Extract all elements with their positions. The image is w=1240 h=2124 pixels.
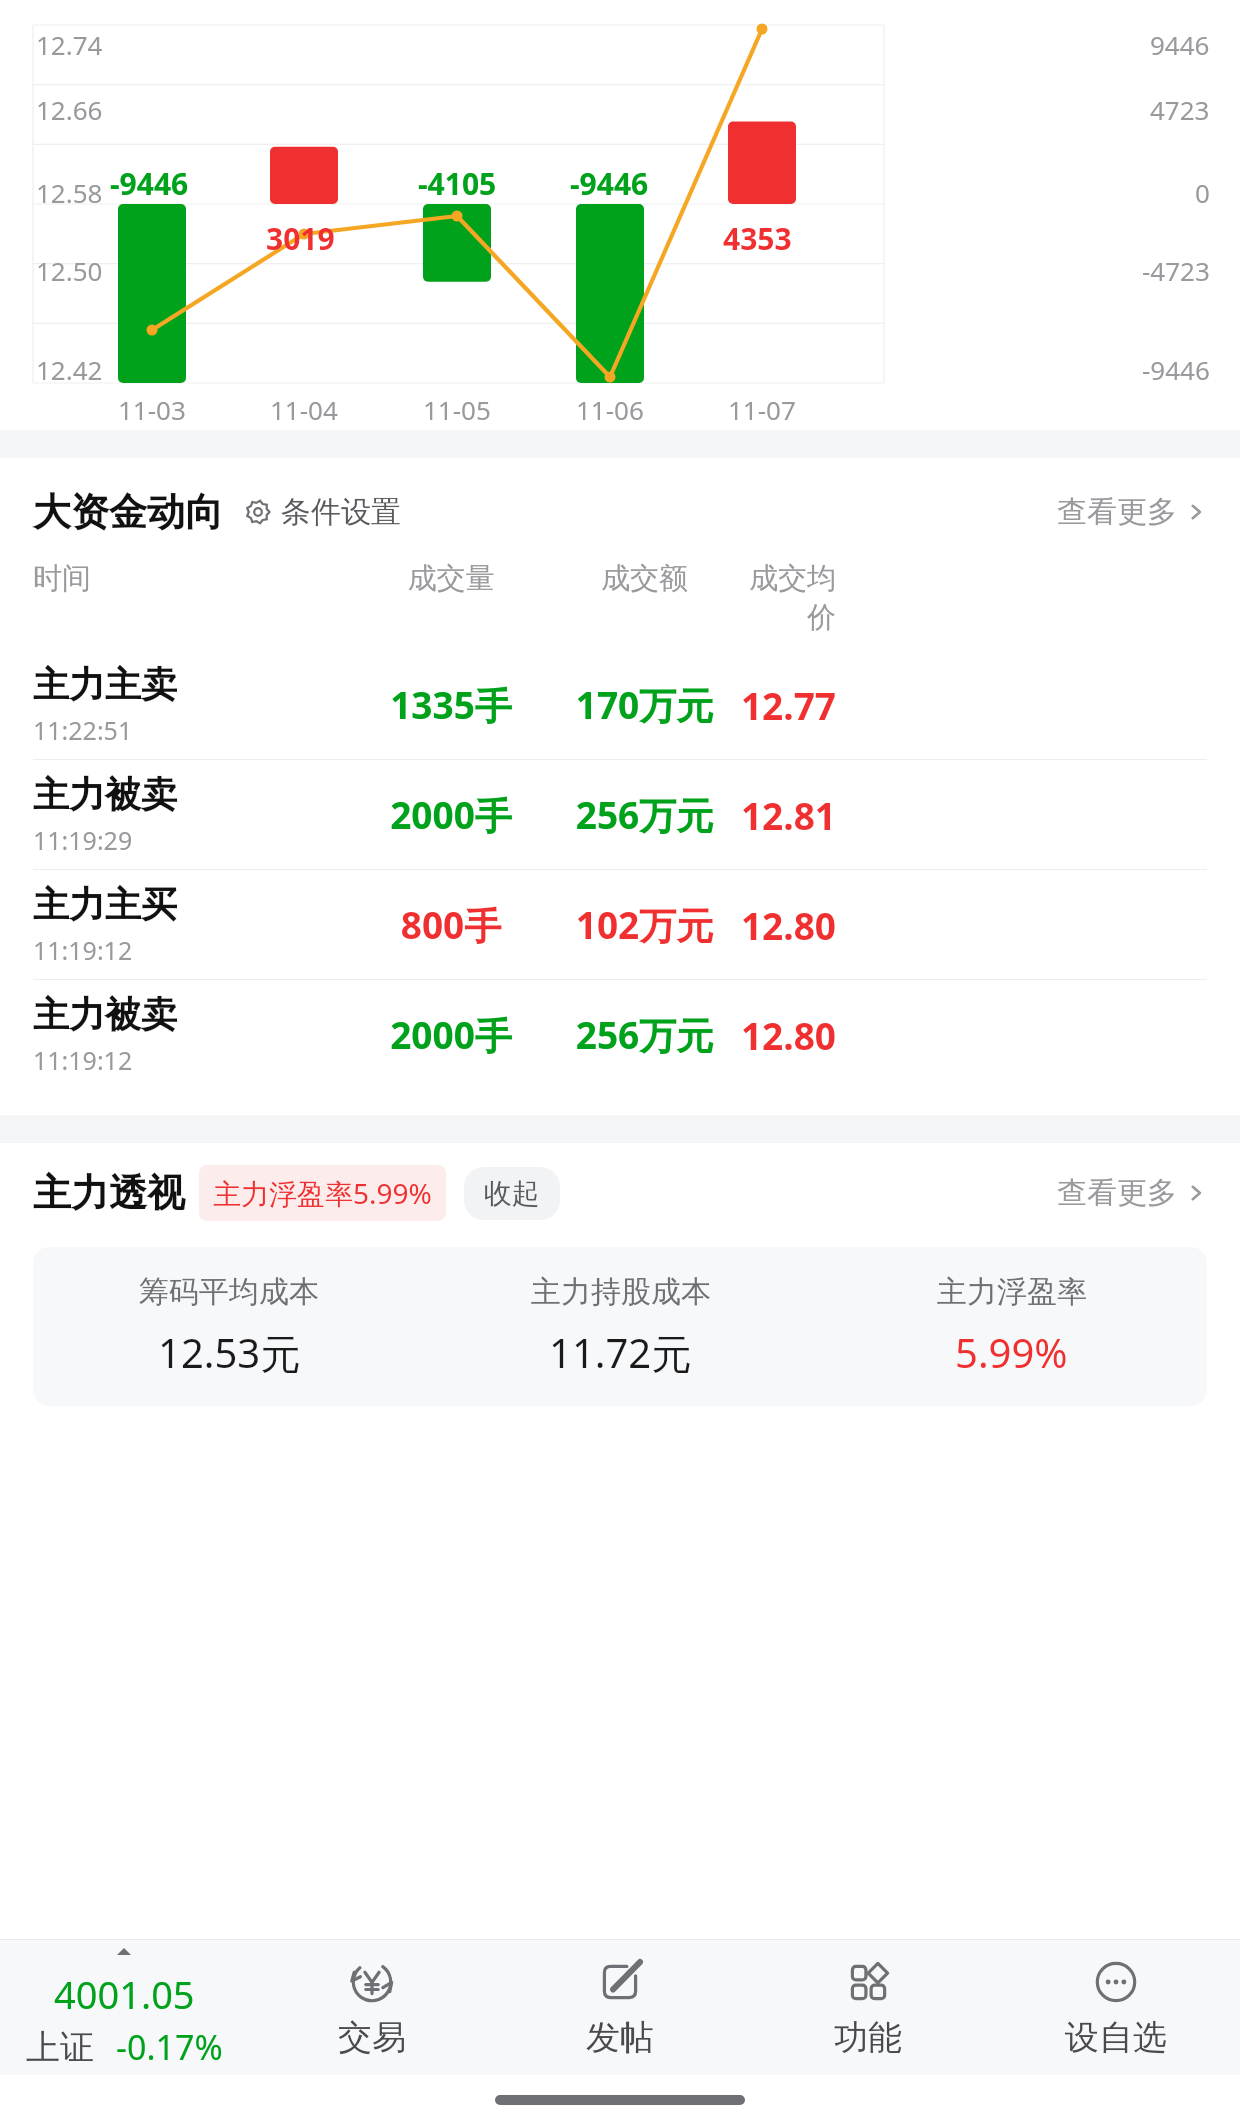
- staticText: 成交量: [338, 560, 564, 597]
- staticText: 交易: [338, 2016, 406, 2059]
- staticText: 4001.05: [54, 1968, 195, 2020]
- staticText: 11:19:12: [33, 1043, 133, 1077]
- staticText: 上证: [26, 2026, 94, 2069]
- staticText: 功能: [834, 2016, 902, 2059]
- button[interactable]: 大资金动向: [0, 480, 1240, 544]
- staticText: 1335手: [338, 679, 564, 730]
- staticText: 11-07: [728, 392, 796, 427]
- staticText: -0.17%: [116, 2024, 223, 2070]
- staticText: 11-03: [118, 392, 186, 427]
- staticText: 主力浮盈率5.99%: [213, 1174, 432, 1212]
- button[interactable]: 主力浮盈率5.99%: [199, 1165, 446, 1221]
- staticText: 256万元: [564, 1009, 725, 1060]
- button[interactable]: 交易: [248, 1956, 496, 2059]
- staticText: 11:22:51: [33, 713, 133, 747]
- staticText: 0: [1195, 175, 1210, 210]
- staticText: 102万元: [564, 899, 725, 950]
- button[interactable]: 筹码平均成本: [33, 1247, 1207, 1406]
- button[interactable]: 主力主买: [0, 870, 1240, 979]
- staticText: 800手: [338, 899, 564, 950]
- staticText: 时间: [33, 560, 338, 597]
- staticText: 12.80: [725, 1010, 836, 1060]
- staticText: 5.99%: [955, 1325, 1068, 1379]
- staticText: 查看更多: [1057, 1174, 1177, 1212]
- staticText: 主力主买: [33, 882, 177, 927]
- staticText: 12.42: [36, 352, 103, 387]
- staticText: 11:19:29: [33, 823, 133, 857]
- staticText: 3019: [266, 218, 335, 259]
- staticText: -9446: [1142, 352, 1210, 387]
- staticText: -4105: [418, 163, 497, 204]
- staticText: 成交均价: [725, 560, 836, 636]
- staticText: 发帖: [586, 2016, 654, 2059]
- staticText: 12.80: [725, 900, 836, 950]
- staticText: 9446: [1150, 27, 1210, 62]
- staticText: 256万元: [564, 789, 725, 840]
- staticText: 主力浮盈率: [937, 1273, 1087, 1311]
- button[interactable]: 4001.05: [0, 1946, 248, 2070]
- button[interactable]: 主力主卖: [0, 650, 1240, 759]
- staticText: 170万元: [564, 679, 725, 730]
- staticText: 12.66: [36, 92, 103, 127]
- staticText: 成交额: [564, 560, 725, 597]
- staticText: 设自选: [1065, 2016, 1167, 2059]
- staticText: 11.72元: [549, 1325, 692, 1380]
- button[interactable]: 查看更多: [1057, 1174, 1207, 1212]
- staticText: 查看更多: [1057, 493, 1177, 531]
- staticText: 主力被卖: [33, 772, 177, 817]
- staticText: -9446: [110, 163, 189, 204]
- staticText: 收起: [484, 1176, 540, 1211]
- staticText: 2000手: [338, 789, 564, 840]
- staticText: 11:19:12: [33, 933, 133, 967]
- staticText: 主力被卖: [33, 992, 177, 1037]
- staticText: 筹码平均成本: [139, 1273, 319, 1311]
- staticText: 11-06: [576, 392, 644, 427]
- button[interactable]: 收起: [464, 1167, 560, 1220]
- staticText: 12.53元: [158, 1325, 301, 1380]
- staticText: 4723: [1150, 92, 1210, 127]
- staticText: 条件设置: [281, 493, 401, 531]
- staticText: 12.58: [36, 175, 103, 210]
- staticText: 12.74: [36, 27, 103, 62]
- staticText: 11-04: [270, 392, 338, 427]
- button[interactable]: 发帖: [496, 1956, 744, 2059]
- staticText: 大资金动向: [33, 488, 223, 536]
- staticText: 12.81: [725, 790, 836, 840]
- staticText: 12.77: [725, 680, 836, 730]
- staticText: 主力主卖: [33, 662, 177, 707]
- staticText: 4353: [723, 218, 792, 259]
- staticText: -9446: [570, 163, 649, 204]
- staticText: 主力持股成本: [531, 1273, 711, 1311]
- staticText: 主力透视: [33, 1169, 185, 1217]
- button[interactable]: 主力被卖: [0, 760, 1240, 869]
- staticText: 11-05: [423, 392, 491, 427]
- button[interactable]: 主力被卖: [0, 980, 1240, 1089]
- staticText: 2000手: [338, 1009, 564, 1060]
- staticText: -4723: [1142, 253, 1210, 288]
- button[interactable]: 功能: [744, 1956, 992, 2059]
- staticText: 12.50: [36, 253, 103, 288]
- button[interactable]: 设自选: [992, 1956, 1240, 2059]
